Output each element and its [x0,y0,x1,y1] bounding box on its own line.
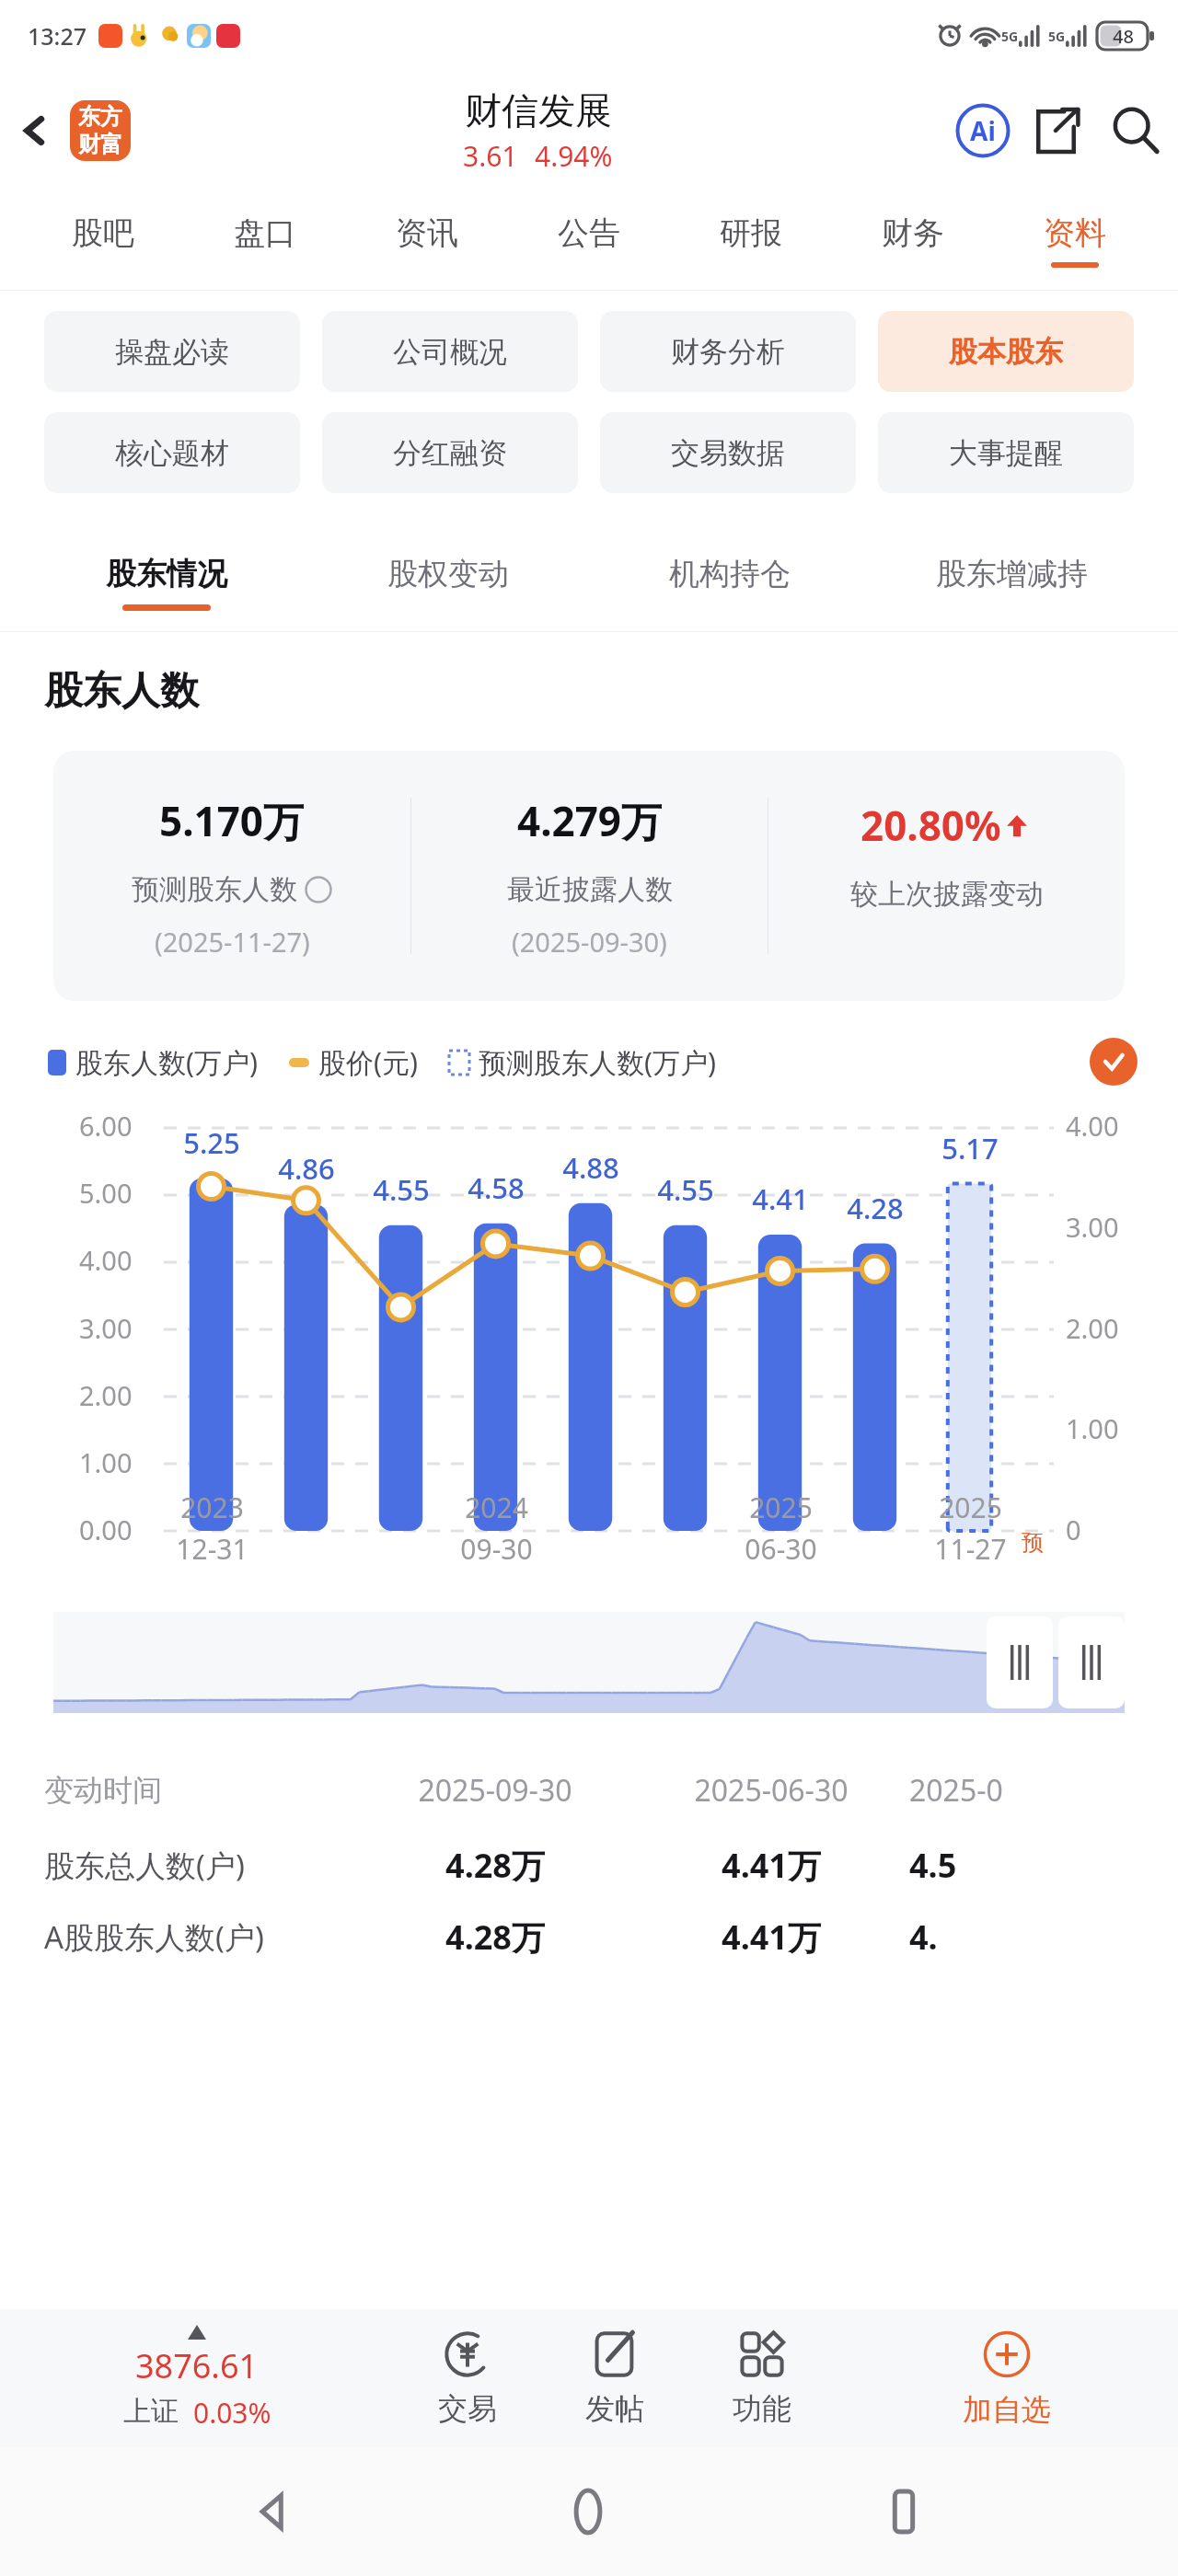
button[interactable]: 交易数据 [600,412,856,493]
staticText: 公告 [558,213,620,253]
button[interactable]: 公司概况 [322,311,578,392]
staticText: 预测股东人数 [132,872,297,907]
button[interactable]: 股东情况 [26,534,307,631]
button[interactable]: 资讯 [346,190,508,291]
staticText: 5G [1001,28,1019,45]
staticText: 公司概况 [393,334,507,370]
staticText: 4.94% [535,137,613,175]
staticText: 2023 [180,1489,244,1526]
button[interactable]: Back [0,72,70,190]
button[interactable]: 发帖 [541,2309,688,2447]
button[interactable]: 财务分析 [600,311,856,392]
staticText: 06-30 [745,1530,817,1568]
staticText: 2.00 [1066,1310,1119,1346]
staticText: 股东增减持 [936,555,1088,593]
staticText: 2025 [749,1489,813,1526]
staticText: 2025-0 [909,1770,1003,1811]
staticText: 交易数据 [671,435,785,471]
staticText: 机构持仓 [669,555,791,593]
staticText: 4.88 [549,1148,633,1187]
button[interactable]: Range handle [987,1616,1053,1708]
button[interactable]: Home [547,2470,629,2553]
button[interactable]: 财务 [832,190,994,291]
staticText: 09-30 [460,1530,533,1568]
staticText: 股价(元) [318,1043,418,1081]
button[interactable]: AI assistant [946,94,1020,167]
button[interactable]: 股东增减持 [871,534,1152,631]
button[interactable]: Search [1093,88,1178,173]
button[interactable]: 分红融资 [322,412,578,493]
button[interactable]: 3876.61 [0,2309,394,2447]
button[interactable]: 股吧 [22,190,184,291]
staticText: 11-27 [934,1530,1007,1568]
staticText: (2025-09-30) [512,924,667,960]
button[interactable]: 股价(元) [289,1043,418,1081]
button[interactable]: 加自选 [836,2309,1178,2447]
staticText: 财富 [78,131,122,158]
button[interactable]: 股东人数(万户) [48,1043,258,1081]
button[interactable]: 功能 [688,2309,836,2447]
button[interactable]: A股股东人数(户) [44,1904,1178,1969]
staticText: 1.00 [1066,1410,1119,1446]
staticText: 盘口 [234,213,296,253]
staticText: 2.00 [79,1377,133,1413]
button[interactable]: 盘口 [184,190,346,291]
staticText: 发帖 [585,2390,644,2427]
button[interactable]: 5.170万 [53,793,410,960]
staticText: 东方 [78,103,122,131]
button[interactable]: 公告 [508,190,670,291]
staticText: 大事提醒 [949,435,1063,471]
button[interactable]: 大事提醒 [878,412,1134,493]
button[interactable]: Back [232,2470,315,2553]
staticText: 4.279万 [517,793,663,848]
staticText: 股吧 [72,213,134,253]
staticText: 股东人数(万户) [75,1043,258,1081]
staticText: 财信发展 [465,87,612,133]
button[interactable]: 交易 [394,2309,541,2447]
staticText: 预测股东人数(万户) [479,1043,716,1081]
staticText: 5.00 [79,1175,133,1211]
staticText: A股股东人数(户) [44,1916,357,1958]
staticText: 5G [1048,28,1066,45]
staticText: 3876.61 [135,2343,259,2388]
button[interactable]: 研报 [670,190,832,291]
staticText: 2025-09-30 [357,1770,633,1811]
staticText: 0.03% [193,2394,271,2432]
button[interactable]: Range handle [1058,1616,1125,1708]
staticText: 2025-06-30 [633,1770,909,1811]
staticText: (2025-11-27) [155,924,310,960]
staticText: 5.170万 [159,793,305,848]
staticText: 股权变动 [387,555,509,593]
staticText: 财务分析 [671,334,785,370]
staticText: 预 [1022,1529,1044,1557]
staticText: 0.00 [79,1512,133,1547]
button[interactable]: 4.279万 [411,793,768,960]
staticText: 1.00 [79,1444,133,1480]
button[interactable]: Recents [862,2470,945,2553]
staticText: 最近披露人数 [507,872,673,907]
button[interactable]: 操盘必读 [44,311,300,392]
button[interactable]: 股权变动 [307,534,589,631]
staticText: 2025 [939,1489,1002,1526]
button[interactable]: 股本股东 [878,311,1134,392]
staticText: 4.86 [264,1149,349,1188]
button[interactable]: 机构持仓 [589,534,871,631]
staticText: 5.25 [169,1123,254,1162]
staticText: 财务 [882,213,944,253]
staticText: 股本股东 [949,334,1063,370]
staticText: 4.5 [909,1843,957,1888]
button[interactable]: 资料 [994,190,1156,291]
button[interactable]: 股东总人数(户) [44,1825,1178,1904]
staticText: 资料 [1044,213,1106,253]
button[interactable]: Confirm [1090,1038,1138,1086]
button[interactable]: 预测股东人数(万户) [449,1043,716,1081]
staticText: 交易 [438,2390,497,2427]
button[interactable]: East Money [70,100,131,161]
staticText: 股东总人数(户) [44,1845,357,1886]
button[interactable]: 20.80% [768,798,1125,955]
staticText: 4.00 [79,1242,133,1278]
button[interactable]: 核心题材 [44,412,300,493]
button[interactable]: Share [1020,94,1093,167]
staticText: 股东情况 [106,555,227,593]
staticText: Ai [970,113,996,148]
